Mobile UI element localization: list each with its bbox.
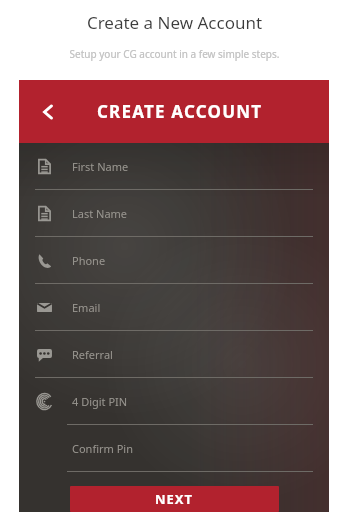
staticText: CREATE ACCOUNT (97, 100, 263, 123)
staticText: Phone (72, 253, 106, 268)
button[interactable]: Confirm Pin (19, 425, 329, 472)
staticText: Confirm Pin (72, 441, 134, 456)
staticText: 4 Digit PIN (72, 394, 128, 409)
button[interactable]: Email (19, 284, 329, 331)
button[interactable]: NEXT (70, 486, 279, 512)
staticText: Referral (72, 347, 113, 362)
button[interactable]: Phone (19, 237, 329, 284)
staticText: Last Name (72, 206, 128, 221)
button[interactable]: Back (35, 99, 61, 125)
staticText: Setup your CG account in a few simple st… (0, 47, 349, 61)
button[interactable]: Last Name (19, 190, 329, 237)
staticText: NEXT (155, 490, 194, 508)
staticText: First Name (72, 159, 129, 174)
button[interactable]: Referral (19, 331, 329, 378)
button[interactable]: First Name (19, 143, 329, 190)
staticText: Create a New Account (0, 11, 349, 34)
button[interactable]: 4 Digit PIN (19, 378, 329, 425)
staticText: Email (72, 300, 101, 315)
